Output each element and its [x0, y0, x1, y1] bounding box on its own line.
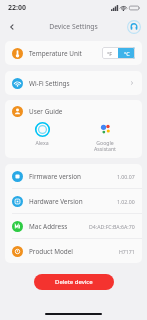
staticText: 1.00.07	[117, 173, 135, 180]
staticText: Device Settings	[49, 22, 98, 31]
staticText: D4:AD:FC:BA:6A:70	[89, 223, 135, 230]
button[interactable]: Delete device	[34, 274, 114, 290]
button[interactable]: Customer support	[127, 20, 141, 34]
staticText: Temperature Unit	[29, 49, 82, 58]
button[interactable]: Hardware Version	[5, 189, 142, 213]
staticText: °F	[107, 50, 113, 57]
button[interactable]: Back	[3, 18, 20, 35]
button[interactable]: °F	[102, 47, 118, 59]
button[interactable]: Wi-Fi Settings	[5, 71, 142, 95]
staticText: Wi-Fi Settings	[29, 79, 70, 88]
staticText: °C	[124, 50, 130, 57]
staticText: 1.02.00	[117, 198, 135, 205]
button[interactable]: Google Assistant	[79, 122, 131, 152]
staticText: Firmware version	[29, 172, 81, 181]
staticText: 22:00	[8, 3, 26, 13]
button[interactable]: °C	[118, 47, 135, 59]
button[interactable]: Mac Address	[5, 214, 142, 238]
button[interactable]: Alexa	[16, 122, 68, 146]
staticText: Delete device	[55, 278, 93, 286]
staticText: Product Model	[29, 247, 74, 256]
staticText: Hardware Version	[29, 197, 83, 206]
staticText: H7171	[119, 248, 135, 255]
button[interactable]: Firmware version	[5, 164, 142, 188]
staticText: User Guide	[29, 107, 63, 116]
staticText: Mac Address	[29, 222, 68, 231]
button[interactable]: Product Model	[5, 239, 142, 263]
staticText: Google Assistant	[94, 139, 116, 152]
staticText: Alexa	[35, 139, 49, 146]
